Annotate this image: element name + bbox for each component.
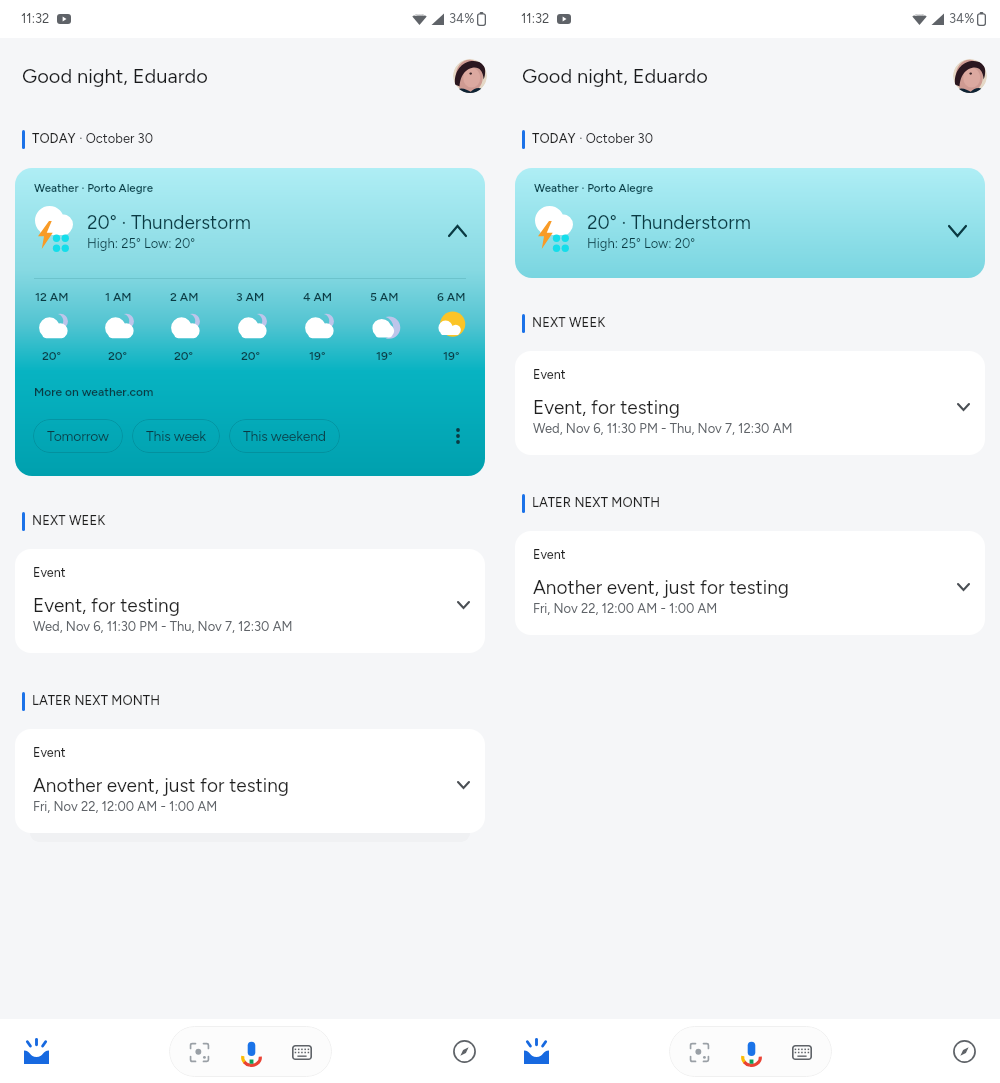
staticText: Weather · Porto Alegre [534, 181, 654, 195]
button[interactable]: Weather · Porto Alegre [515, 168, 985, 278]
button[interactable]: Explore [944, 1031, 984, 1071]
staticText: 11:32 [21, 11, 50, 27]
staticText: 1 AM [105, 290, 132, 304]
staticText: Event, for testing [33, 594, 180, 617]
staticText: Good night, Eduardo [22, 64, 208, 88]
staticText: Fri, Nov 22, 12:00 AM - 1:00 AM [33, 799, 218, 815]
button[interactable]: Keyboard [786, 1036, 818, 1068]
staticText: Event [533, 547, 566, 562]
staticText: · October 30 [76, 131, 153, 147]
staticText: Event, for testing [533, 396, 680, 419]
staticText: TODAY [532, 131, 576, 147]
button[interactable]: Search with Google Lens [183, 1036, 215, 1068]
staticText: 2 AM [170, 290, 199, 304]
button[interactable]: Event [515, 351, 985, 455]
staticText: Event [533, 367, 566, 382]
staticText: 6 AM [437, 290, 466, 304]
staticText: High: 25° Low: 20° [587, 236, 696, 252]
staticText: 20° [108, 349, 128, 363]
button[interactable]: Account [453, 59, 487, 93]
staticText: Weather · Porto Alegre [34, 181, 154, 195]
button[interactable]: Explore [444, 1031, 484, 1071]
button[interactable]: Expand event [948, 572, 978, 602]
staticText: Event [33, 565, 66, 580]
button[interactable]: More options [445, 423, 471, 449]
button[interactable]: Event [15, 549, 485, 653]
staticText: Good night, Eduardo [522, 64, 708, 88]
button[interactable]: Discover [16, 1031, 56, 1071]
staticText: 11:32 [521, 11, 550, 27]
staticText: 4 AM [303, 290, 333, 304]
staticText: 5 AM [370, 290, 399, 304]
button[interactable]: Tomorrow [33, 419, 123, 453]
staticText: 20° [241, 349, 261, 363]
button[interactable]: Expand event [948, 392, 978, 422]
staticText: This weekend [243, 428, 326, 445]
staticText: Another event, just for testing [533, 576, 789, 599]
button[interactable]: Discover [516, 1031, 556, 1071]
staticText: NEXT WEEK [532, 315, 606, 331]
button[interactable]: Voice search [734, 1035, 768, 1069]
staticText: · October 30 [576, 131, 653, 147]
staticText: 34% [949, 11, 975, 27]
button[interactable]: Keyboard [286, 1036, 318, 1068]
staticText: Wed, Nov 6, 11:30 PM - Thu, Nov 7, 12:30… [33, 619, 293, 635]
button[interactable]: Event [515, 531, 985, 635]
staticText: Another event, just for testing [33, 774, 289, 797]
staticText: 3 AM [236, 290, 265, 304]
button[interactable]: Account [953, 59, 987, 93]
staticText: This week [146, 428, 206, 445]
staticText: More on weather.com [34, 385, 154, 399]
button[interactable]: Collapse [441, 215, 473, 247]
staticText: High: 25° Low: 20° [87, 236, 196, 252]
staticText: Event [33, 745, 66, 760]
staticText: 19° [309, 349, 326, 363]
button[interactable]: This weekend [229, 419, 340, 453]
staticText: 20° · Thunderstorm [587, 211, 751, 234]
button[interactable]: Weather · Porto Alegre [15, 168, 485, 476]
staticText: NEXT WEEK [32, 513, 106, 529]
staticText: 20° [174, 349, 194, 363]
staticText: TODAY [32, 131, 76, 147]
staticText: 19° [376, 349, 393, 363]
button[interactable]: Expand event [448, 590, 478, 620]
staticText: LATER NEXT MONTH [532, 495, 661, 511]
staticText: Fri, Nov 22, 12:00 AM - 1:00 AM [533, 601, 718, 617]
button[interactable]: Expand event [448, 770, 478, 800]
button[interactable]: Expand [941, 215, 973, 247]
button[interactable]: Voice search [234, 1035, 268, 1069]
staticText: Wed, Nov 6, 11:30 PM - Thu, Nov 7, 12:30… [533, 421, 793, 437]
staticText: LATER NEXT MONTH [32, 693, 161, 709]
staticText: Tomorrow [47, 428, 109, 445]
button[interactable]: Search with Google Lens [683, 1036, 715, 1068]
staticText: 20° · Thunderstorm [87, 211, 251, 234]
staticText: 12 AM [35, 290, 69, 304]
button[interactable]: This week [132, 419, 220, 453]
button[interactable]: Event [15, 729, 485, 833]
staticText: 20° [42, 349, 62, 363]
staticText: 34% [449, 11, 475, 27]
staticText: 19° [443, 349, 460, 363]
